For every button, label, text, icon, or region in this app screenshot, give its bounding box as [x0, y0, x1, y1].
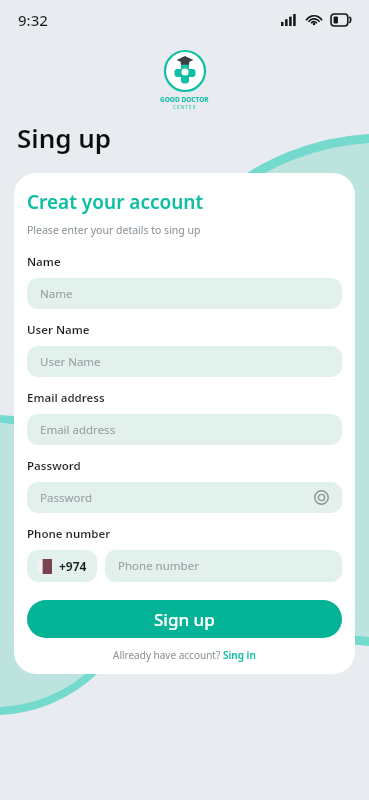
staticText: GOOD DOCTOR: [160, 95, 209, 104]
button[interactable]: Sign up: [27, 600, 342, 638]
staticText: Password: [40, 490, 93, 506]
button[interactable]: Email address: [27, 414, 342, 445]
staticText: Please enter your details to sing up: [27, 223, 201, 237]
button[interactable]: Phone number: [105, 550, 342, 582]
staticText: Sing in: [223, 648, 256, 662]
button[interactable]: User Name: [27, 346, 342, 377]
staticText: Name: [27, 254, 61, 270]
staticText: Sign up: [154, 608, 215, 631]
staticText: Name: [40, 286, 73, 302]
staticText: Phone number: [27, 526, 111, 542]
button[interactable]: Name: [27, 278, 342, 309]
staticText: User Name: [27, 322, 90, 338]
staticText: +974: [59, 558, 87, 574]
staticText: Email address: [40, 422, 116, 438]
button[interactable]: Sing in: [223, 648, 256, 662]
staticText: 9:32: [18, 10, 48, 30]
staticText: Email address: [27, 390, 105, 406]
button[interactable]: +974: [27, 550, 97, 582]
staticText: Creat your account: [27, 189, 204, 215]
button[interactable]: Show password: [314, 490, 329, 505]
button[interactable]: Password: [27, 482, 342, 513]
staticText: Sing up: [17, 120, 112, 155]
staticText: User Name: [40, 354, 101, 370]
staticText: Phone number: [118, 558, 199, 574]
staticText: C E N T E R: [173, 104, 196, 110]
staticText: Password: [27, 458, 81, 474]
staticText: Allready have account?: [113, 648, 223, 662]
